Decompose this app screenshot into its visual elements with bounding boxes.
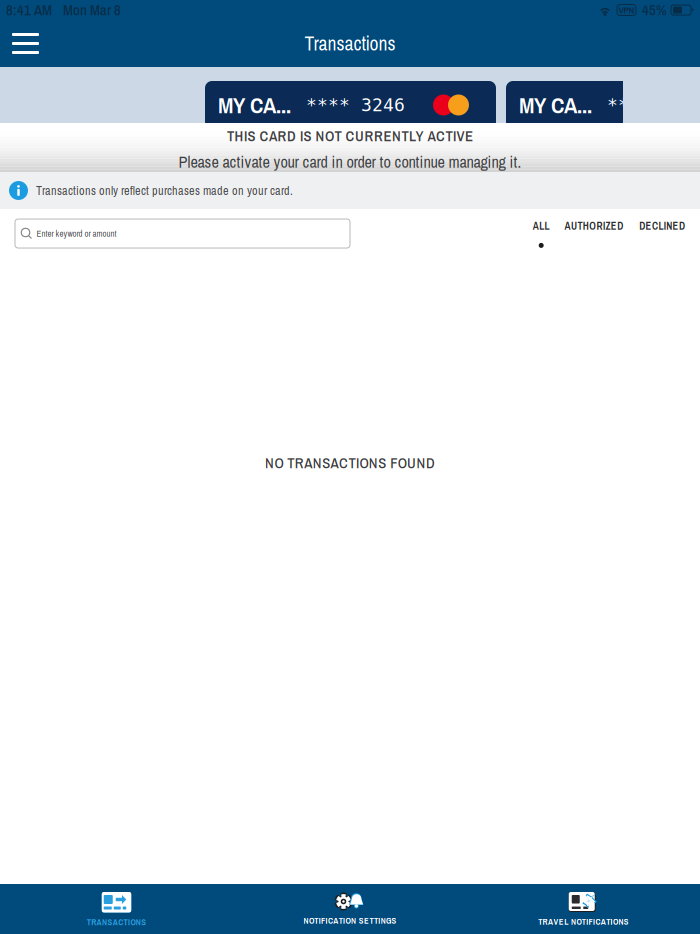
button[interactable]: ALL	[533, 219, 550, 247]
button[interactable]: TRANSACTIONS	[0, 884, 233, 934]
staticText: THIS CARD IS NOT CURRENTLY ACTIVE	[227, 126, 473, 146]
staticText: Mon Mar 8	[63, 0, 121, 20]
staticText: ALL	[533, 219, 550, 233]
staticText: DECLINED	[639, 219, 685, 233]
staticText: **** 3246	[306, 94, 405, 115]
staticText: 45%	[642, 0, 667, 20]
staticText: **** 1	[607, 94, 673, 115]
staticText: NOTIFICATION SETTINGS	[303, 915, 396, 926]
staticText: Transactions	[304, 30, 395, 57]
button[interactable]: MY CA...	[506, 81, 700, 129]
button[interactable]: Search transactions	[15, 219, 350, 248]
button[interactable]: TRAVEL NOTIFICATIONS	[467, 884, 700, 934]
staticText: TRAVEL NOTIFICATIONS	[538, 916, 629, 927]
staticText: 8:41 AM	[6, 0, 52, 20]
button[interactable]: Menu	[0, 20, 51, 67]
staticText: NO TRANSACTIONS FOUND	[265, 453, 435, 473]
button[interactable]: AUTHORIZED	[565, 219, 623, 247]
staticText: VPN	[618, 3, 634, 17]
staticText: Please activate your card in order to co…	[178, 151, 521, 173]
button[interactable]: MY CA...	[205, 81, 496, 129]
staticText: MY CA...	[519, 90, 592, 120]
staticText: MY CA...	[218, 90, 291, 120]
staticText: AUTHORIZED	[565, 219, 623, 233]
staticText: Transactions only reflect purchases made…	[36, 182, 293, 199]
staticText: TRANSACTIONS	[87, 916, 146, 928]
button[interactable]: DECLINED	[639, 219, 685, 247]
staticText: Enter keyword or amount	[36, 228, 116, 239]
button[interactable]: NOTIFICATION SETTINGS	[233, 884, 467, 934]
